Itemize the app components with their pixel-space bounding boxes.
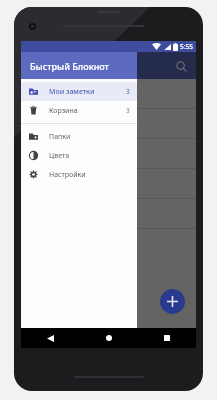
staticText: Быстрый Блокнот	[30, 60, 109, 72]
staticText: Корзина	[49, 106, 78, 116]
button[interactable]: Корзина	[21, 101, 137, 120]
button[interactable]: 26.11.2019 г. 6:50:02 ДП	[21, 199, 196, 228]
button[interactable]: 26.11.2019 г. 6:54:53 ДП	[21, 109, 196, 138]
staticText: 3	[126, 87, 130, 96]
staticText: 5:55	[180, 42, 193, 51]
button[interactable]: Search	[171, 56, 191, 76]
staticText: 26.11.2019 г. 6:54:53 ДП	[29, 119, 104, 128]
button[interactable]: Настройки	[21, 165, 137, 184]
button[interactable]: Back	[21, 328, 80, 348]
button[interactable]: Recents	[138, 328, 196, 348]
button[interactable]: Папки	[21, 127, 137, 146]
button[interactable]: Add note	[160, 289, 185, 314]
staticText: Папки	[49, 132, 71, 142]
button[interactable]: Цвета	[21, 146, 137, 165]
staticText: Быстрый Блокнот	[30, 60, 109, 72]
button[interactable]: Мои заметки	[21, 82, 137, 101]
button[interactable]: Home	[80, 328, 138, 348]
button[interactable]: 26.11.2019 г. 6:53:44 ДП	[21, 139, 196, 168]
staticText: 3	[126, 106, 130, 115]
button[interactable]: 26.11.2019 г. 6:52:10 ДП	[21, 169, 196, 198]
staticText: 26.11.2019 г. 6:53:44 ДП	[29, 149, 104, 158]
staticText: Цвета	[49, 151, 70, 161]
staticText: 26.11.2019 г. 6:55:14 ДП	[29, 89, 104, 98]
staticText: Настройки	[49, 170, 86, 180]
staticText: Мои заметки	[49, 87, 95, 97]
button[interactable]: 26.11.2019 г. 6:55:14 ДП	[21, 79, 196, 108]
